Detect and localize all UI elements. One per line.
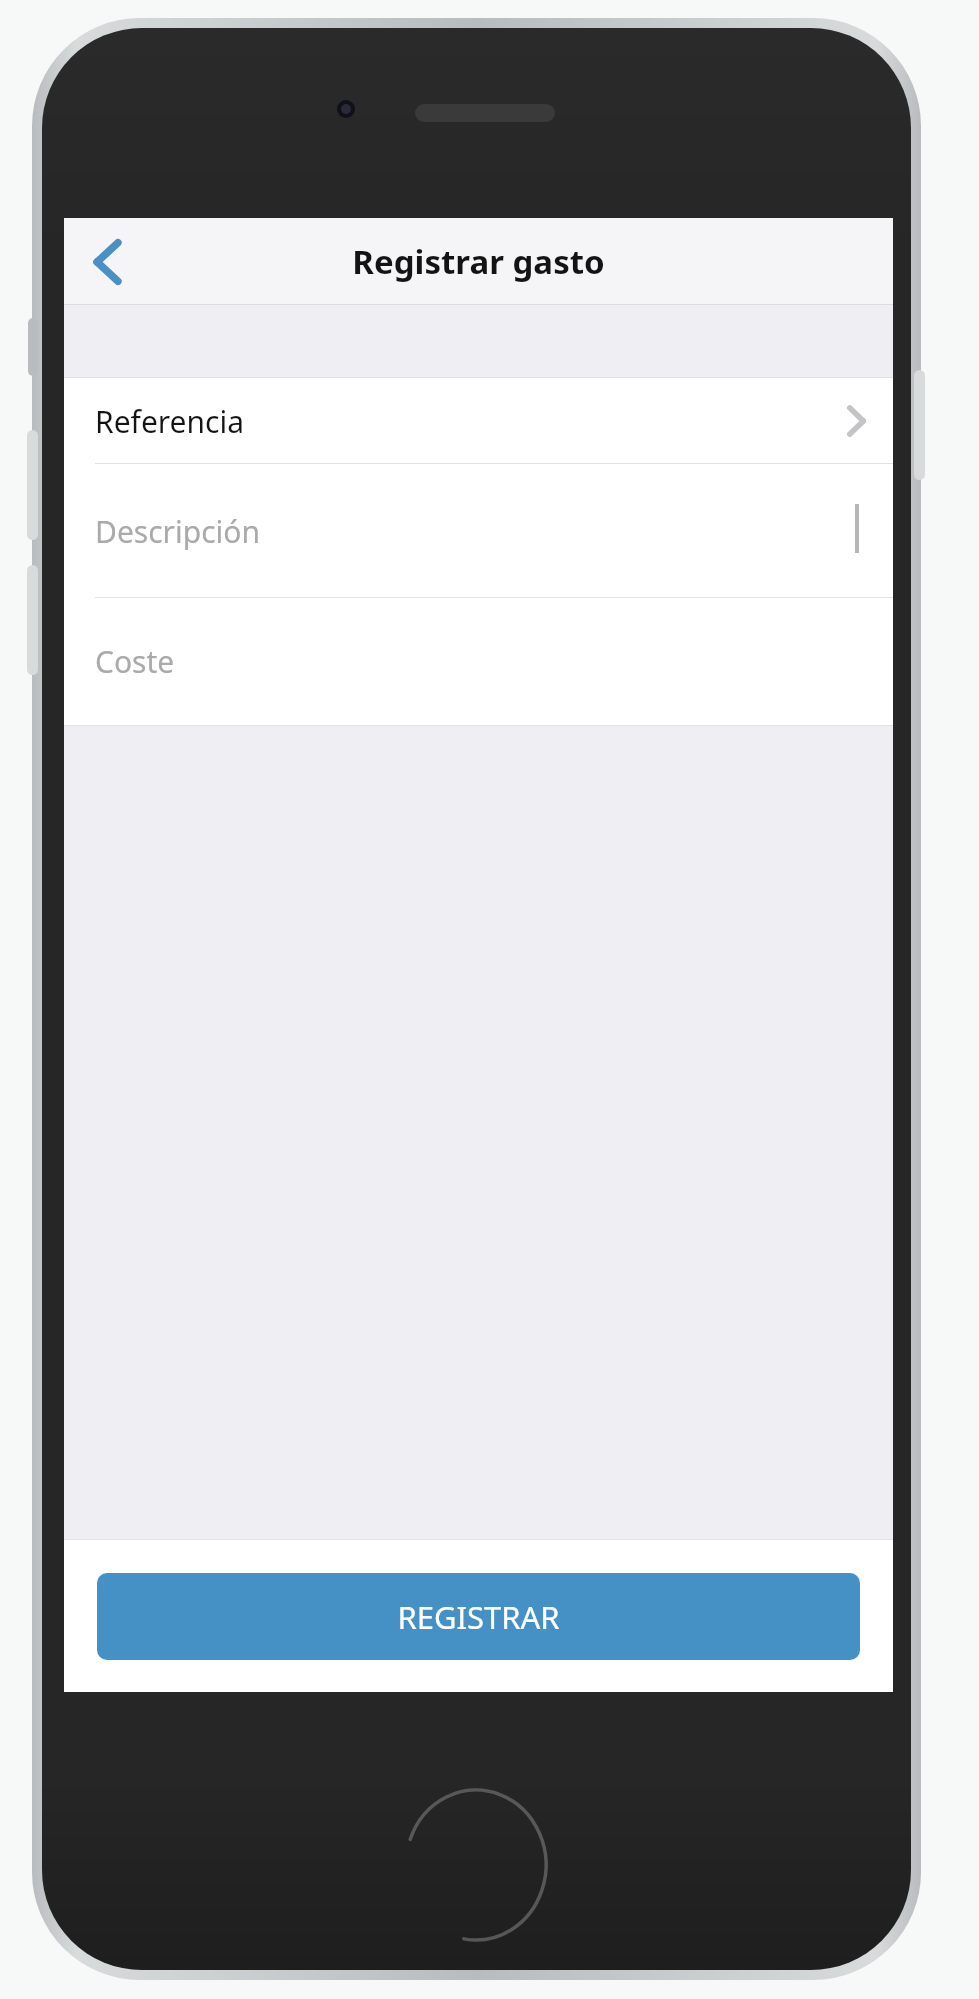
staticText: Descripción — [95, 511, 260, 552]
button[interactable]: Back — [64, 218, 150, 305]
button[interactable]: Referencia — [64, 378, 893, 464]
staticText: Referencia — [95, 401, 245, 442]
button[interactable]: REGISTRAR — [97, 1573, 860, 1660]
staticText: Registrar gasto — [352, 239, 605, 284]
button[interactable]: Coste — [64, 598, 893, 725]
staticText: Coste — [95, 641, 175, 682]
staticText: REGISTRAR — [397, 1596, 560, 1638]
button[interactable]: Descripción — [64, 464, 893, 598]
